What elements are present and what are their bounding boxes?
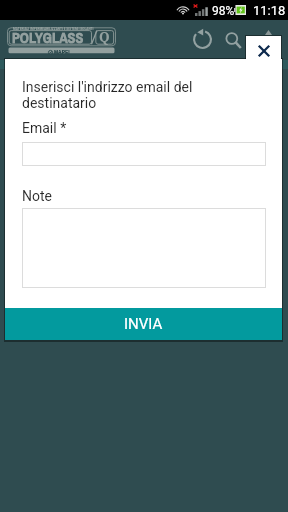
button[interactable]: Refresh: [188, 25, 217, 54]
button[interactable]: [22, 142, 266, 166]
staticText: Note: [22, 188, 52, 204]
staticText: G R O U P: [51, 52, 64, 56]
staticText: INVIA: [124, 315, 163, 333]
button[interactable]: [22, 208, 266, 288]
staticText: Q: [99, 28, 110, 46]
staticText: 11:18: [253, 3, 286, 18]
staticText: MATERIALI IMPERMEABILIZZANTI E SISTEMI I…: [13, 27, 94, 31]
staticText: 98%: [212, 4, 235, 18]
staticText: MAPEI: [54, 48, 70, 56]
button[interactable]: INVIA: [5, 308, 282, 340]
button[interactable]: Close: [246, 36, 281, 65]
staticText: Inserisci l'indrizzo email del destinata…: [22, 79, 237, 111]
staticText: Email *: [22, 120, 67, 136]
button[interactable]: Search: [219, 26, 248, 55]
staticText: POLYGLASS: [12, 28, 84, 47]
